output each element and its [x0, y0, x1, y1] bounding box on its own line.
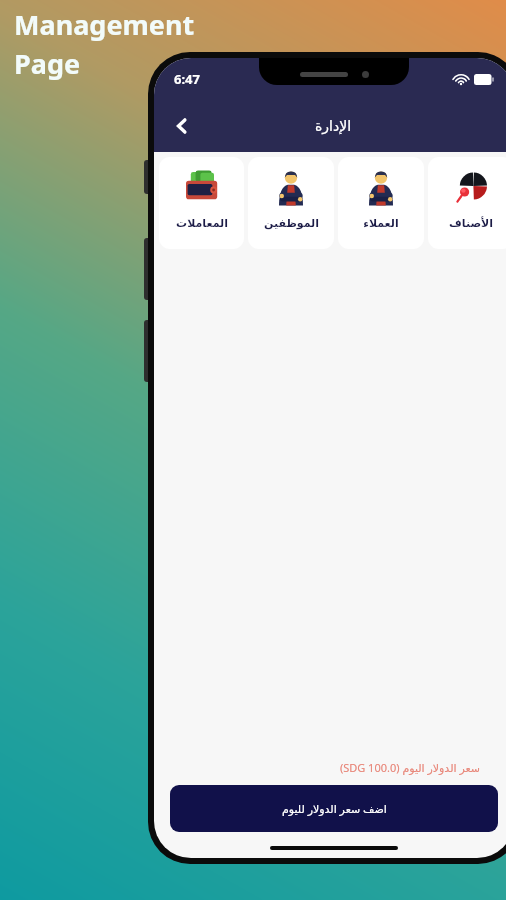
staticText: Management: [14, 6, 195, 43]
button[interactable]: الأصناف: [428, 157, 506, 249]
staticText: الموظفين: [264, 217, 319, 230]
staticText: (SDG 100.0) سعر الدولار اليوم: [154, 760, 480, 775]
button[interactable]: العملاء: [338, 157, 424, 249]
staticText: 6:47: [174, 70, 200, 88]
staticText: الأصناف: [449, 217, 493, 230]
button[interactable]: الموظفين: [248, 157, 334, 249]
staticText: Page: [14, 45, 81, 82]
staticText: العملاء: [363, 217, 399, 230]
button[interactable]: المعاملات: [159, 157, 244, 249]
staticText: المعاملات: [176, 217, 228, 230]
staticText: الإدارة: [315, 118, 352, 134]
staticText: اضف سعر الدولار لليوم: [282, 801, 387, 816]
button[interactable]: اضف سعر الدولار لليوم: [170, 785, 498, 832]
button[interactable]: Back: [162, 106, 202, 146]
